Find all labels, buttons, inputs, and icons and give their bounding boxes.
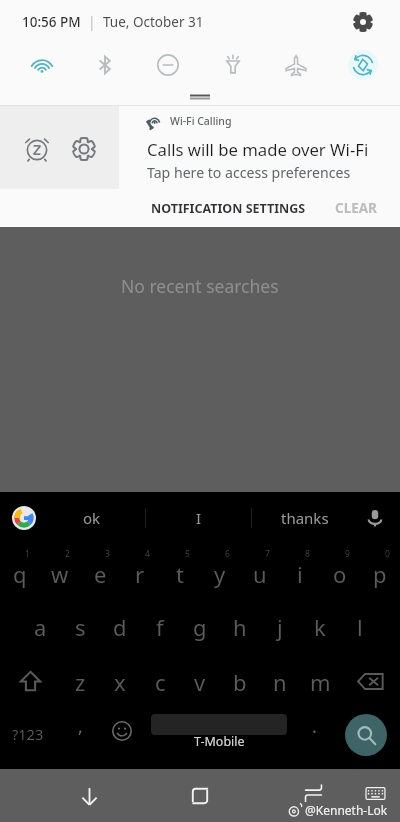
staticText: y (214, 559, 226, 589)
button[interactable]: k (300, 599, 340, 654)
button[interactable]: I (146, 492, 251, 543)
staticText: 2 (65, 548, 70, 560)
staticText: m (310, 667, 331, 697)
button[interactable]: ok (39, 492, 145, 543)
button[interactable]: 9 (320, 543, 360, 599)
button[interactable]: Keyboard (355, 773, 395, 813)
staticText: No recent searches (121, 274, 279, 298)
button[interactable]: 5 (160, 543, 200, 599)
button[interactable]: c (140, 654, 180, 709)
button[interactable]: Voice input (357, 500, 393, 536)
staticText: d (113, 612, 127, 642)
staticText: T-Mobile (194, 733, 245, 750)
staticText: v (194, 667, 206, 697)
button[interactable]: bt (83, 44, 127, 86)
button[interactable]: 2 (40, 543, 80, 599)
staticText: Wi-Fi Calling (170, 114, 232, 128)
staticText: 7 (265, 548, 270, 560)
button[interactable]: n (260, 654, 300, 709)
button[interactable]: Emoji (102, 711, 142, 751)
button[interactable]: Google (9, 503, 39, 533)
button[interactable]: Home (178, 774, 222, 818)
staticText: i (297, 559, 303, 589)
button[interactable]: rotate (341, 44, 385, 86)
staticText: 10:56 PM (22, 13, 81, 31)
staticText: 3 (105, 548, 110, 560)
button[interactable]: Recents (291, 771, 335, 815)
button[interactable]: Backspace (340, 654, 400, 709)
staticText: f (156, 612, 164, 642)
staticText: s (75, 612, 86, 642)
staticText: 9 (345, 548, 350, 560)
button[interactable]: 3 (80, 543, 120, 599)
staticText: 5 (185, 548, 190, 560)
staticText: @Kenneth-Lok (305, 802, 388, 818)
staticText: NOTIFICATION SETTINGS (151, 200, 306, 217)
button[interactable]: m (300, 654, 340, 709)
button[interactable]: s (60, 599, 100, 654)
button[interactable]: 0 (360, 543, 400, 599)
button[interactable]: plane (274, 44, 318, 86)
button[interactable]: a (20, 599, 60, 654)
staticText: I (196, 508, 202, 528)
button[interactable]: f (140, 599, 180, 654)
button[interactable]: dnd (146, 44, 190, 86)
button[interactable]: l (340, 599, 380, 654)
staticText: CLEAR (335, 199, 377, 217)
staticText: Calls will be made over Wi-Fi (147, 138, 369, 161)
button[interactable]: g (180, 599, 220, 654)
staticText: h (233, 612, 247, 642)
button[interactable]: d (100, 599, 140, 654)
staticText: w (51, 559, 69, 589)
button[interactable]: 8 (280, 543, 320, 599)
staticText: j (277, 612, 283, 642)
staticText: ?123 (12, 724, 44, 744)
button[interactable]: CLEAR (325, 190, 387, 226)
button[interactable]: NOTIFICATION SETTINGS (141, 191, 316, 226)
staticText: Tue, October 31 (103, 13, 204, 31)
button[interactable]: thanks (252, 492, 357, 543)
staticText: b (233, 667, 247, 697)
button[interactable]: v (180, 654, 220, 709)
button[interactable]: z (60, 654, 100, 709)
staticText: 8 (305, 548, 310, 560)
button[interactable]: Settings (348, 7, 378, 37)
button[interactable]: Space (151, 713, 287, 757)
button[interactable]: ?123 (2, 709, 54, 757)
button[interactable]: flash (211, 44, 255, 86)
staticText: u (253, 559, 267, 589)
staticText: | (81, 13, 103, 31)
staticText: a (34, 612, 47, 642)
staticText: 1 (25, 548, 30, 560)
button[interactable]: Search (340, 709, 392, 761)
staticText: l (357, 612, 363, 642)
staticText: c (155, 667, 166, 697)
staticText: x (114, 667, 126, 697)
staticText: n (273, 667, 287, 697)
button[interactable]: Back (67, 774, 111, 818)
button[interactable]: h (220, 599, 260, 654)
button[interactable]: . (296, 713, 332, 749)
staticText: ok (83, 508, 101, 528)
button[interactable]: Shift (0, 654, 60, 709)
staticText: r (135, 559, 145, 589)
staticText: t (176, 559, 184, 589)
button[interactable]: b (220, 654, 260, 709)
button[interactable]: x (100, 654, 140, 709)
button[interactable]: wifi (20, 44, 64, 86)
button[interactable]: Wi-Fi Calling (119, 106, 400, 189)
button[interactable]: 4 (120, 543, 160, 599)
button[interactable]: j (260, 599, 300, 654)
staticText: Tap here to access preferences (147, 163, 351, 182)
staticText: p (373, 559, 387, 589)
staticText: , (78, 714, 83, 739)
button[interactable]: Notification settings (64, 129, 104, 169)
staticText: k (314, 612, 326, 642)
button[interactable]: 6 (200, 543, 240, 599)
button[interactable]: Snooze (17, 129, 57, 169)
staticText: thanks (281, 508, 329, 528)
staticText: q (13, 559, 27, 589)
button[interactable]: , (60, 711, 100, 751)
button[interactable]: 1 (0, 543, 40, 599)
button[interactable]: 7 (240, 543, 280, 599)
